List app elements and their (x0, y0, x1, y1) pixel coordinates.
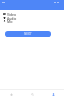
staticText: NEXT (24, 32, 32, 36)
staticText: Mic (7, 19, 13, 23)
button[interactable]: NEXT (5, 31, 51, 37)
button[interactable]: Profile (43, 90, 64, 100)
staticText: Audio (7, 16, 17, 20)
button[interactable]: Audio (0, 16, 64, 20)
button[interactable]: Home (0, 90, 22, 100)
button[interactable]: Video (0, 12, 64, 16)
button[interactable]: Search (22, 90, 43, 100)
button[interactable]: Mic (0, 19, 64, 23)
staticText: Video (7, 12, 17, 16)
